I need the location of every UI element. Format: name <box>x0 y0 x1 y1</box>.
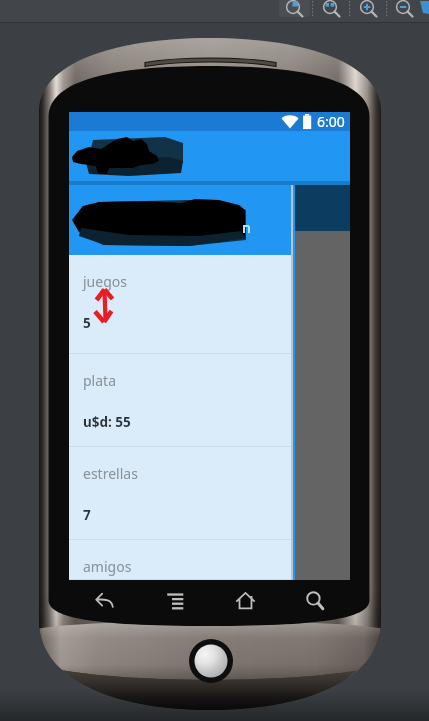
button[interactable]: estrellas <box>69 447 291 540</box>
staticText: juegos <box>83 272 127 291</box>
button[interactable]: Search <box>280 581 350 619</box>
staticText: 5 <box>83 314 91 332</box>
button[interactable]: Back <box>69 581 140 619</box>
button[interactable]: juegos <box>69 255 291 354</box>
button[interactable]: Section header <box>69 185 291 255</box>
button[interactable]: plata <box>69 354 291 447</box>
button[interactable]: amigos <box>69 540 291 580</box>
staticText: amigos <box>83 557 132 576</box>
staticText: plata <box>83 371 116 390</box>
button[interactable]: Zoom fit <box>279 0 310 17</box>
staticText: estrellas <box>83 464 138 483</box>
button[interactable]: App title <box>69 131 350 181</box>
button[interactable]: Menu <box>140 581 210 619</box>
staticText: u$d: 55 <box>83 413 131 431</box>
staticText: 7 <box>83 506 91 524</box>
button[interactable]: Home <box>210 581 280 619</box>
staticText: 6:00 <box>317 112 345 131</box>
